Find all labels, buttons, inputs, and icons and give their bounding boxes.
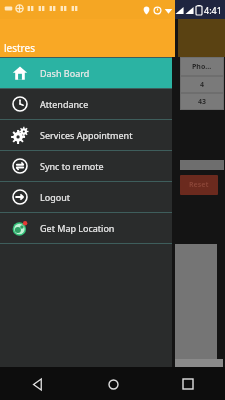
staticText: Attendance [40,98,89,110]
staticText: Pho... [192,62,212,72]
other: Get Map Location [12,220,28,236]
staticText: 43 [198,97,207,107]
button[interactable]: Back [26,372,50,396]
button[interactable]: Recents [176,372,200,396]
button[interactable]: Reset [180,175,218,195]
staticText: Logout [40,191,70,203]
button[interactable]: Dash Board [0,58,172,88]
staticText: lestres [4,41,35,55]
staticText: Services Appointment [40,129,133,141]
button[interactable]: Attendance [0,89,172,119]
button[interactable]: Logout [0,182,172,212]
button[interactable]: Get Map Location [0,213,172,243]
staticText: Sync to remote [40,160,104,172]
staticText: Dash Board [40,67,90,79]
other: Sync to remote [12,158,28,174]
button[interactable]: Services Appointment [0,120,172,150]
other: Logout [12,189,28,205]
button[interactable]: Home [101,372,125,396]
other: Attendance [12,96,28,112]
other: Dash Board [12,65,28,81]
button[interactable]: Sync to remote [0,151,172,181]
other: Services Appointment [12,127,28,143]
staticText: 4:41 [204,4,222,16]
staticText: Reset [189,180,209,190]
staticText: Get Map Location [40,222,115,234]
staticText: 4 [200,80,205,90]
